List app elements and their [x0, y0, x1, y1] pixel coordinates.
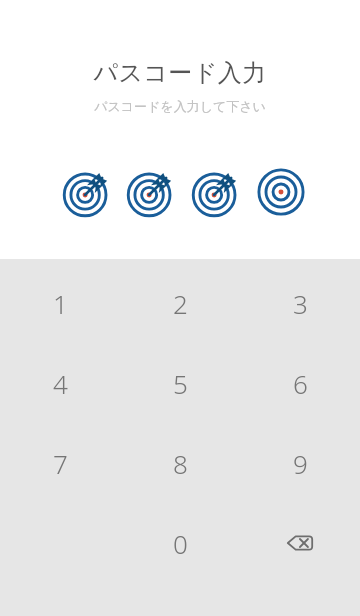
staticText: 5: [173, 366, 188, 401]
button[interactable]: 0: [120, 503, 240, 583]
button[interactable]: 4: [0, 343, 120, 423]
button[interactable]: 8: [120, 423, 240, 503]
staticText: パスコード入力: [93, 58, 267, 88]
button[interactable]: 1: [0, 263, 120, 343]
button[interactable]: Backspace: [240, 503, 360, 583]
staticText: 3: [293, 286, 308, 321]
button[interactable]: 7: [0, 423, 120, 503]
staticText: 8: [173, 446, 188, 481]
staticText: パスコードを入力して下さい: [94, 98, 266, 114]
staticText: 4: [53, 366, 68, 401]
button[interactable]: 5: [120, 343, 240, 423]
staticText: 9: [293, 446, 308, 481]
button[interactable]: 6: [240, 343, 360, 423]
staticText: 0: [173, 526, 188, 561]
staticText: 6: [293, 366, 308, 401]
staticText: 2: [173, 286, 188, 321]
button[interactable]: 3: [240, 263, 360, 343]
button[interactable]: 9: [240, 423, 360, 503]
staticText: 1: [53, 286, 68, 321]
button[interactable]: 2: [120, 263, 240, 343]
staticText: 7: [53, 446, 68, 481]
